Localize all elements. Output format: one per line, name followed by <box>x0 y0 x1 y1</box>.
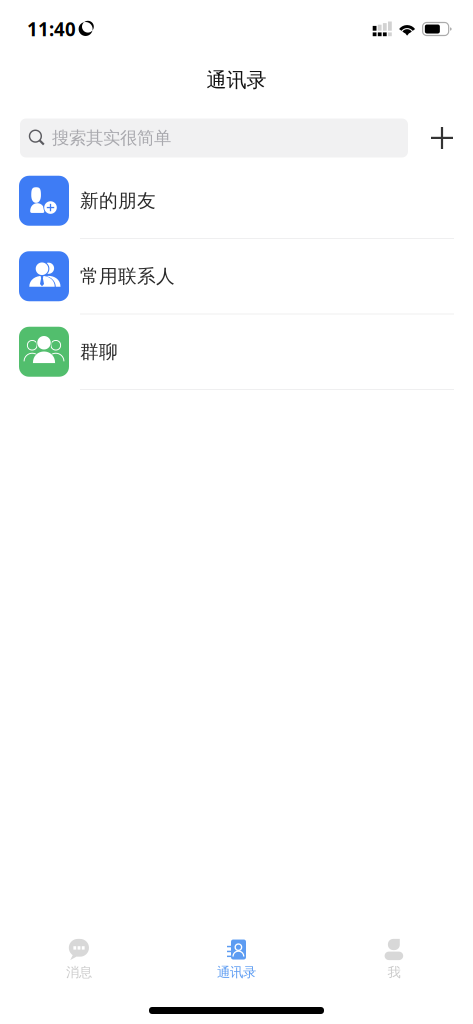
button[interactable]: 通讯录 <box>158 937 315 985</box>
staticText: 我 <box>388 964 401 981</box>
staticText: 常用联系人 <box>80 264 175 288</box>
button[interactable]: 搜索其实很简单 <box>20 118 408 157</box>
button[interactable]: 常用联系人 <box>0 239 473 314</box>
staticText: 搜索其实很简单 <box>52 127 171 149</box>
button[interactable]: Add contact <box>420 118 464 157</box>
button[interactable]: 消息 <box>0 937 158 985</box>
button[interactable]: 新的朋友 <box>0 163 473 239</box>
staticText: 新的朋友 <box>80 189 156 212</box>
button[interactable]: 我 <box>315 937 473 985</box>
staticText: 通讯录 <box>206 67 266 93</box>
button[interactable]: 群聊 <box>0 314 473 390</box>
staticText: 通讯录 <box>217 964 256 981</box>
staticText: 群聊 <box>80 340 118 363</box>
staticText: 消息 <box>66 964 92 981</box>
staticText: 11:40 <box>27 16 76 42</box>
